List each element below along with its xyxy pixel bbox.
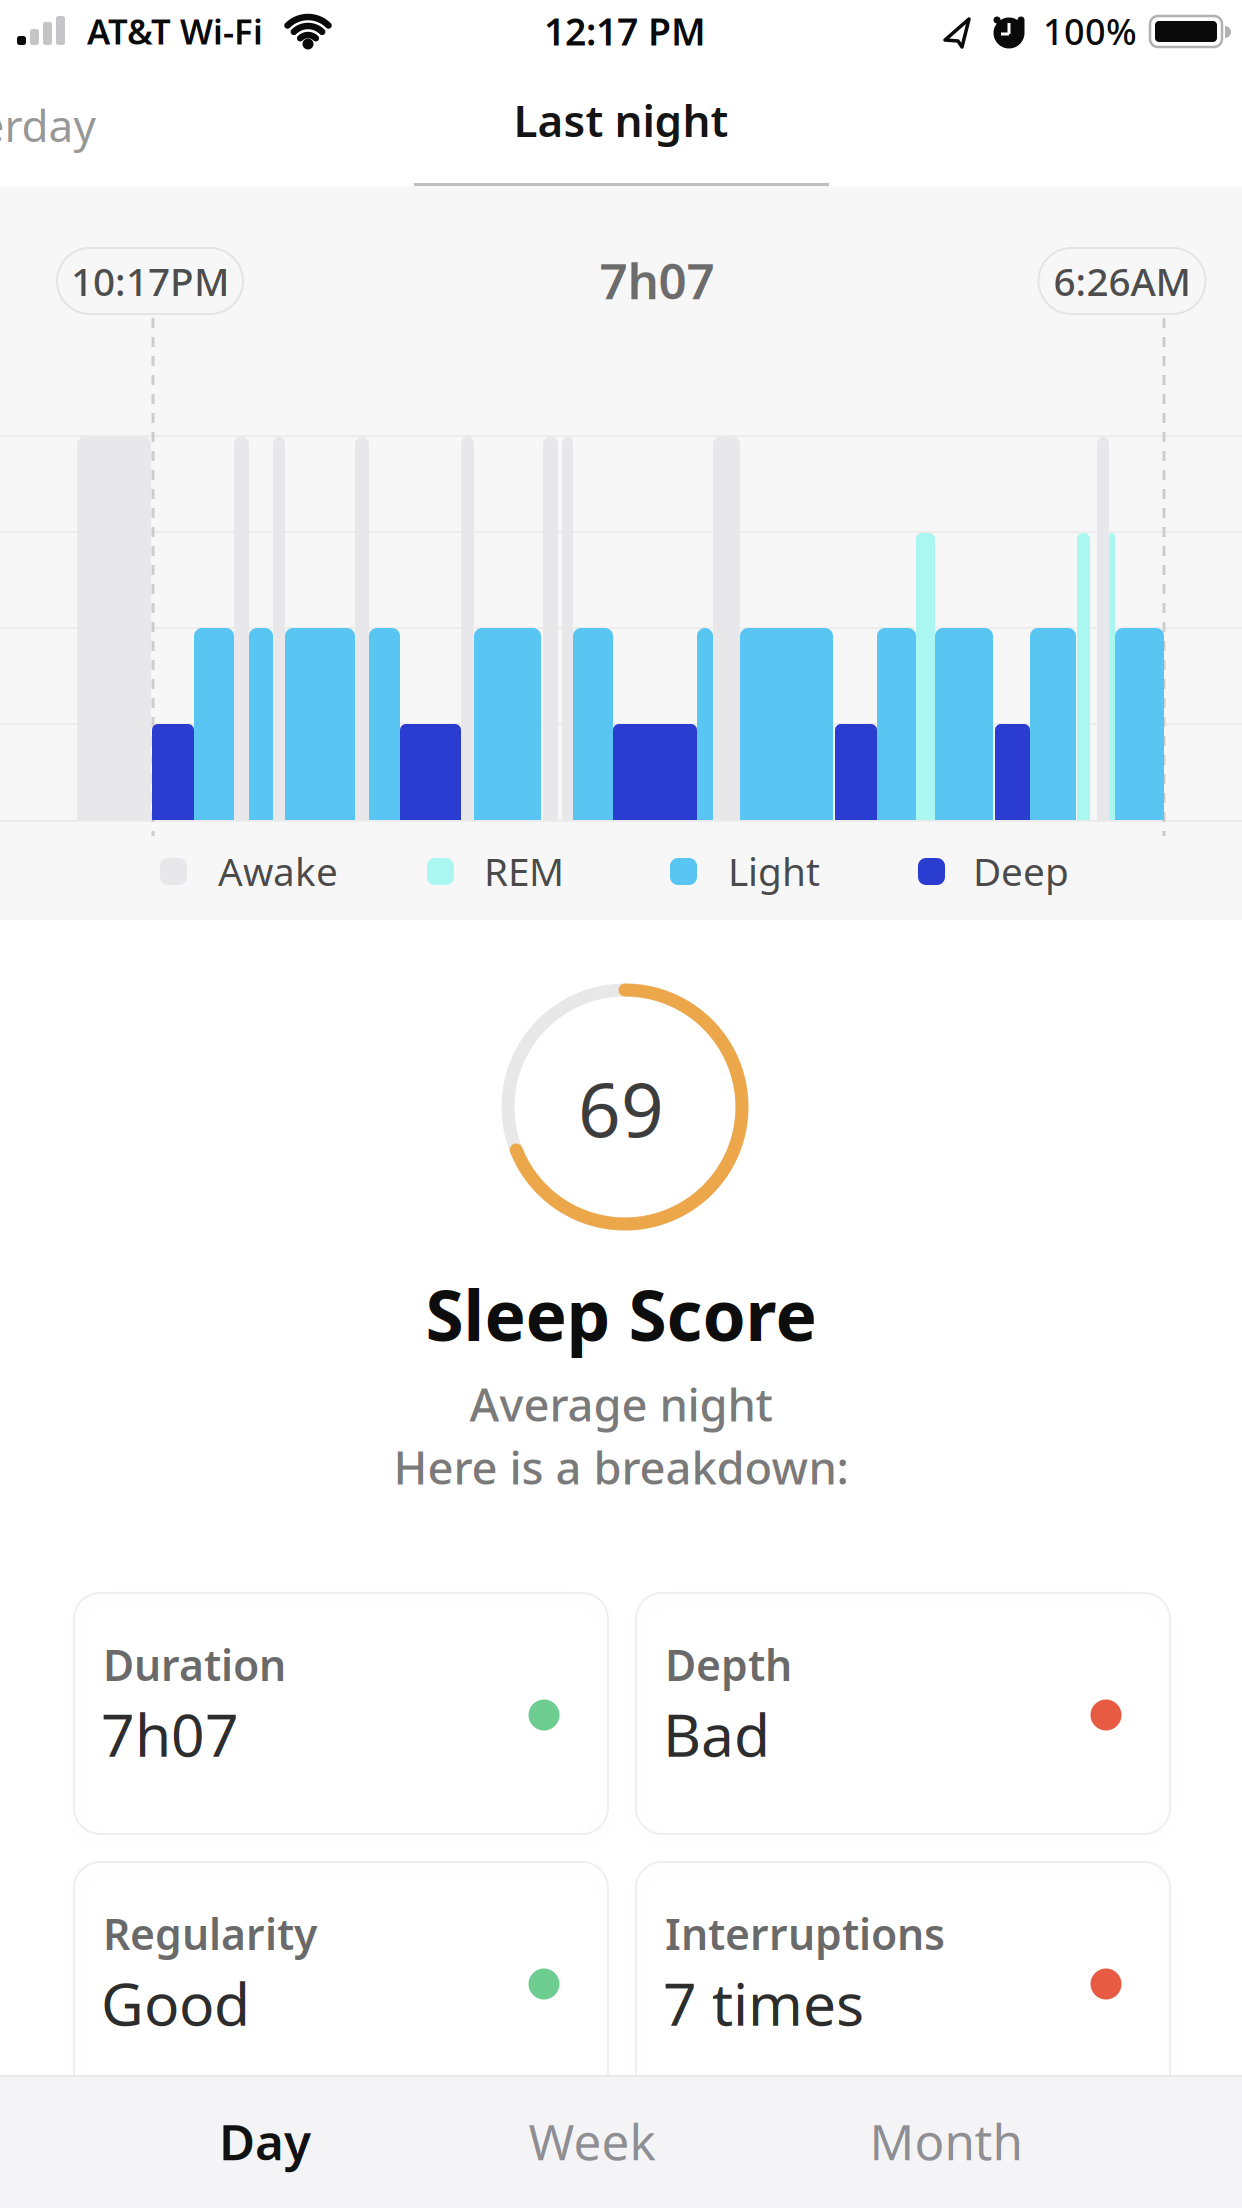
staticText: AT&T Wi-Fi: [87, 8, 263, 54]
staticText: Bad: [663, 1695, 770, 1773]
staticText: Sleep Score: [425, 1268, 816, 1360]
staticText: 7h07: [599, 247, 714, 313]
staticText: 100%: [1043, 7, 1137, 55]
button[interactable]: Month: [796, 2081, 1096, 2201]
button[interactable]: Week: [442, 2081, 742, 2201]
button[interactable]: Duration: [74, 1593, 608, 1834]
staticText: Awake: [218, 845, 338, 897]
staticText: Good: [101, 1964, 250, 2042]
staticText: 12:17 PM: [544, 6, 706, 56]
staticText: Duration: [103, 1636, 286, 1693]
staticText: Light: [728, 845, 820, 897]
staticText: 7h07: [101, 1695, 239, 1773]
staticText: Here is a breakdown:: [393, 1437, 848, 1497]
staticText: REM: [484, 845, 564, 897]
staticText: Deep: [973, 845, 1069, 897]
staticText: Day: [219, 2108, 311, 2174]
button[interactable]: Regularity: [74, 1862, 608, 2103]
staticText: Week: [528, 2108, 655, 2174]
staticText: Month: [869, 2108, 1022, 2174]
staticText: 6:26AM: [1053, 255, 1190, 307]
button[interactable]: Yesterday: [0, 96, 95, 154]
staticText: 10:17PM: [71, 255, 229, 307]
button[interactable]: Depth: [636, 1593, 1170, 1834]
staticText: 69: [578, 1058, 664, 1158]
staticText: 7 times: [663, 1964, 864, 2042]
button[interactable]: Day: [115, 2081, 415, 2201]
staticText: Yesterday: [0, 96, 95, 154]
button[interactable]: Interruptions: [636, 1862, 1170, 2103]
staticText: Regularity: [103, 1905, 317, 1962]
staticText: Last night: [513, 91, 728, 149]
staticText: Depth: [665, 1636, 792, 1693]
staticText: Average night: [469, 1374, 772, 1434]
staticText: Interruptions: [665, 1905, 945, 1962]
